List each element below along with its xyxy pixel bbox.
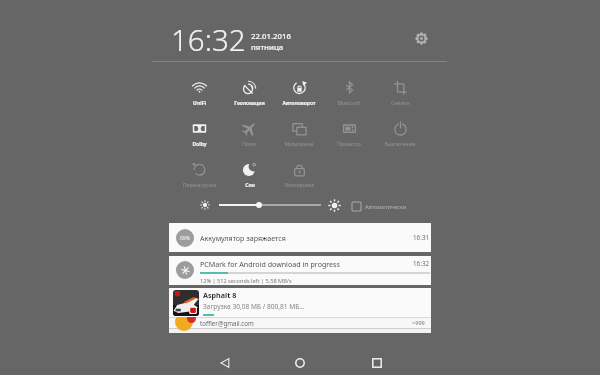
staticText: Перезагрузка <box>183 182 216 189</box>
staticText: Dolby <box>192 141 207 148</box>
button[interactable]: Мультиокна <box>274 121 324 153</box>
staticText: toffler@gmail.com <box>200 319 254 327</box>
button[interactable]: Recents <box>366 352 388 374</box>
button[interactable]: Back <box>214 352 236 374</box>
button[interactable]: toffler@gmail.com <box>169 317 431 328</box>
button[interactable]: Автоматически <box>350 199 407 214</box>
button[interactable]: Проектор <box>324 121 374 153</box>
button[interactable]: UniFi <box>174 80 224 112</box>
button[interactable]: Автоповорот <box>274 80 324 112</box>
button[interactable]: Dolby <box>174 121 224 153</box>
button[interactable]: 69% <box>169 223 431 252</box>
staticText: 69% <box>180 235 190 242</box>
staticText: 16:31 <box>413 233 430 242</box>
staticText: Мультиокна <box>284 141 314 148</box>
button[interactable]: High brightness <box>328 199 341 212</box>
staticText: >999 <box>412 319 425 327</box>
button[interactable]: Asphalt 8 <box>169 288 431 317</box>
staticText: 16:32 <box>413 259 430 268</box>
staticText: PCMark for Android download in progress <box>200 259 340 269</box>
staticText: 22.01.2016 <box>251 31 291 42</box>
staticText: Полет <box>242 141 257 148</box>
button[interactable]: Home <box>289 352 311 374</box>
staticText: Сон <box>245 182 255 189</box>
button[interactable]: Settings <box>410 27 432 49</box>
staticText: Геолокация <box>234 100 265 107</box>
button[interactable]: Блокировка <box>274 162 324 194</box>
button[interactable]: Сон <box>224 162 274 194</box>
staticText: Снимок <box>391 100 410 107</box>
staticText: Bluetooth <box>337 100 361 107</box>
staticText: 12% | 512 seconds left | 5,58 MB/s <box>200 277 292 285</box>
staticText: UniFi <box>193 100 206 107</box>
staticText: Выключение <box>384 141 416 148</box>
staticText: Блокировка <box>285 182 314 189</box>
button[interactable]: Перезагрузка <box>174 162 224 194</box>
staticText: Автоповорот <box>282 100 316 107</box>
button[interactable]: Bluetooth <box>324 80 374 112</box>
button[interactable]: PCMark for Android download in progress <box>169 256 431 285</box>
staticText: пятница <box>251 42 284 53</box>
staticText: Проектор <box>337 141 361 148</box>
staticText: Загрузка 30,08 МБ / 800,81 МБ... <box>203 302 305 311</box>
button[interactable]: Low brightness <box>200 200 210 210</box>
staticText: Аккумулятор заряжается <box>200 233 286 243</box>
staticText: 16:32 <box>171 19 246 59</box>
staticText: Автоматически <box>365 203 407 211</box>
staticText: Asphalt 8 <box>203 290 237 300</box>
button[interactable]: Полет <box>224 121 274 153</box>
button[interactable]: Снимок <box>375 80 425 112</box>
button[interactable]: Выключение <box>375 121 425 153</box>
button[interactable]: Геолокация <box>224 80 274 112</box>
